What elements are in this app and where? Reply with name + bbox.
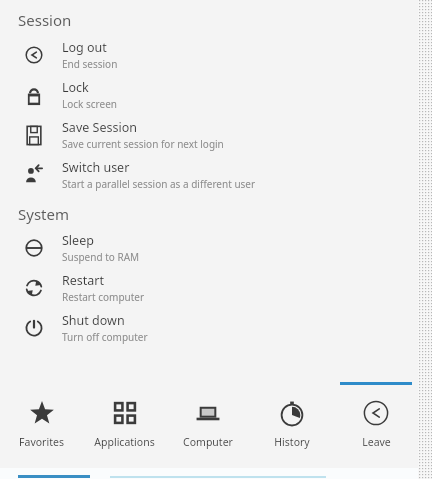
staticText: Lock — [62, 79, 89, 96]
button[interactable]: Shut down — [0, 308, 432, 348]
staticText: Restart computer — [62, 290, 145, 304]
staticText: Suspend to RAM — [62, 250, 140, 264]
staticText: Switch user — [62, 159, 130, 176]
staticText: System — [18, 204, 69, 224]
staticText: History — [274, 435, 310, 449]
button[interactable]: Favorites — [0, 382, 83, 468]
staticText: Applications — [94, 435, 155, 449]
staticText: Favorites — [19, 435, 64, 449]
staticText: Restart — [62, 272, 105, 289]
button[interactable]: Sleep — [0, 228, 432, 268]
other: Applications — [112, 400, 138, 426]
staticText: Save current session for next login — [62, 137, 224, 151]
button[interactable]: History — [250, 382, 334, 468]
staticText: Log out — [62, 39, 107, 56]
other: Favorites — [29, 400, 55, 426]
staticText: Save Session — [62, 119, 137, 136]
other: Leave — [363, 400, 389, 426]
button[interactable]: Applications — [83, 382, 166, 468]
staticText: Session — [18, 10, 72, 30]
staticText: Shut down — [62, 312, 125, 329]
button[interactable]: Computer — [166, 382, 250, 468]
staticText: Leave — [362, 435, 391, 449]
staticText: Computer — [183, 435, 233, 449]
button[interactable]: Switch user — [0, 155, 432, 195]
button[interactable]: Save Session — [0, 115, 432, 155]
button[interactable]: Restart — [0, 268, 432, 308]
other: Computer — [195, 400, 221, 426]
staticText: End session — [62, 57, 118, 71]
other: History — [279, 400, 305, 426]
staticText: Start a parallel session as a different … — [62, 177, 256, 191]
button[interactable]: Lock — [0, 75, 432, 115]
button[interactable]: Leave — [334, 382, 418, 468]
staticText: Lock screen — [62, 97, 118, 111]
staticText: Turn off computer — [62, 330, 148, 344]
button[interactable]: Log out — [0, 35, 432, 75]
staticText: Sleep — [62, 232, 94, 249]
